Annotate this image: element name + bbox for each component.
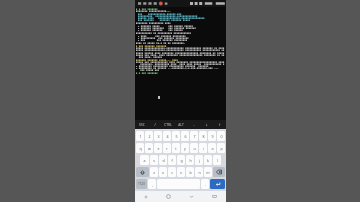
- button[interactable]: v: [177, 167, 185, 177]
- button[interactable]: 8: [199, 131, 207, 141]
- button[interactable]: Backspace: [213, 167, 225, 177]
- button[interactable]: 6: [181, 131, 189, 141]
- button[interactable]: p: [217, 143, 225, 153]
- staticText: x: [162, 170, 164, 175]
- button[interactable]: u: [190, 143, 198, 153]
- button[interactable]: ESC: [135, 120, 148, 129]
- staticText: m: [206, 170, 210, 175]
- staticText: j: [199, 158, 200, 163]
- button[interactable]: 5: [172, 131, 180, 141]
- button[interactable]: 7: [190, 131, 198, 141]
- staticText: /: [154, 123, 156, 127]
- staticText: c: [171, 170, 173, 175]
- staticText: b: [189, 170, 192, 175]
- button[interactable]: 4: [163, 131, 171, 141]
- staticText: z: [153, 170, 155, 175]
- staticText: ,: [152, 182, 153, 187]
- button[interactable]: Switch keyboard: [203, 191, 226, 202]
- staticText: l: [217, 158, 218, 163]
- button[interactable]: Recents: [135, 191, 157, 202]
- button[interactable]: 0: [217, 131, 225, 141]
- staticText: r: [166, 146, 168, 151]
- staticText: h: [189, 158, 192, 163]
- button[interactable]: .: [201, 179, 209, 189]
- staticText: k: [207, 158, 209, 163]
- button[interactable]: l: [213, 155, 221, 165]
- button[interactable]: e: [154, 143, 162, 153]
- button[interactable]: a: [140, 155, 149, 165]
- staticText: q: [139, 146, 142, 151]
- staticText: t: [175, 146, 177, 151]
- button[interactable]: Shift: [136, 167, 149, 177]
- staticText: i: [203, 146, 204, 151]
- staticText: v: [180, 170, 182, 175]
- staticText: ?123: [138, 182, 145, 186]
- button[interactable]: x: [159, 167, 167, 177]
- button[interactable]: ALT: [174, 120, 187, 129]
- button[interactable]: t: [172, 143, 180, 153]
- button[interactable]: ↓: [200, 120, 213, 129]
- button[interactable]: o: [208, 143, 216, 153]
- button[interactable]: i: [199, 143, 207, 153]
- staticText: d: [162, 158, 165, 163]
- staticText: .: [205, 182, 206, 187]
- button[interactable]: q: [136, 143, 144, 153]
- staticText: f: [171, 158, 173, 163]
- button[interactable]: Symbols: [136, 179, 147, 189]
- staticText: 3: [157, 134, 160, 139]
- staticText: 9: [211, 134, 214, 139]
- staticText: w: [148, 146, 151, 151]
- staticText: ESC: [139, 123, 145, 127]
- button[interactable]: w: [145, 143, 153, 153]
- button[interactable]: 3: [154, 131, 162, 141]
- staticText: ALT: [178, 123, 184, 127]
- staticText: o: [211, 146, 214, 151]
- button[interactable]: b: [186, 167, 194, 177]
- button[interactable]: k: [204, 155, 212, 165]
- button[interactable]: s: [150, 155, 158, 165]
- staticText: n: [198, 170, 201, 175]
- staticText: g: [180, 158, 183, 163]
- staticText: 5: [175, 134, 178, 139]
- staticText: 4: [166, 134, 169, 139]
- staticText: y: [184, 146, 186, 151]
- button[interactable]: Hide keyboard: [180, 191, 203, 202]
- staticText: ↑: [218, 123, 221, 127]
- staticText: s: [153, 158, 155, 163]
- staticText: p: [220, 146, 223, 151]
- button[interactable]: /: [148, 120, 161, 129]
- button[interactable]: Enter: [210, 179, 225, 189]
- button[interactable]: n: [195, 167, 203, 177]
- staticText: ↓: [205, 123, 208, 127]
- button[interactable]: z: [150, 167, 158, 177]
- button[interactable]: c: [168, 167, 176, 177]
- staticText: 6: [184, 134, 187, 139]
- button[interactable]: m: [204, 167, 212, 177]
- staticText: 8: [202, 134, 205, 139]
- button[interactable]: j: [195, 155, 203, 165]
- button[interactable]: d: [159, 155, 167, 165]
- button[interactable]: -: [187, 120, 200, 129]
- button[interactable]: 1: [136, 131, 144, 141]
- button[interactable]: ↑: [213, 120, 226, 129]
- staticText: 1: [139, 134, 142, 139]
- button[interactable]: f: [168, 155, 176, 165]
- button[interactable]: 9: [208, 131, 216, 141]
- button[interactable]: 2: [145, 131, 153, 141]
- staticText: -: [193, 123, 195, 127]
- button[interactable]: g: [177, 155, 185, 165]
- staticText: u: [193, 146, 196, 151]
- staticText: CTRL: [164, 123, 172, 127]
- staticText: 2: [148, 134, 151, 139]
- button[interactable]: y: [181, 143, 189, 153]
- staticText: 7: [193, 134, 196, 139]
- staticText: 0: [220, 134, 223, 139]
- staticText: a: [143, 158, 146, 163]
- button[interactable]: h: [186, 155, 194, 165]
- button[interactable]: ,: [148, 179, 156, 189]
- button[interactable]: CTRL: [161, 120, 174, 129]
- button[interactable]: Home: [157, 191, 180, 202]
- button[interactable]: r: [163, 143, 171, 153]
- staticText: e: [157, 146, 160, 151]
